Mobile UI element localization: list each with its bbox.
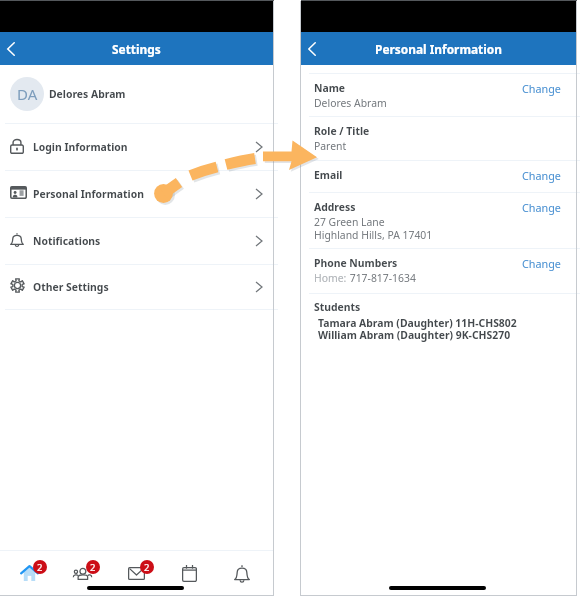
button[interactable]: Change bbox=[522, 200, 576, 215]
button[interactable]: Personal Information bbox=[0, 170, 273, 217]
button[interactable]: Change bbox=[522, 81, 576, 96]
staticText: Personal Information bbox=[33, 187, 144, 201]
staticText: Phone Numbers bbox=[314, 256, 398, 270]
staticText: Change bbox=[522, 200, 561, 215]
staticText: Notifications bbox=[33, 234, 101, 248]
staticText: Change bbox=[522, 81, 561, 96]
staticText: Change bbox=[522, 256, 561, 271]
button[interactable]: Mail bbox=[117, 558, 155, 588]
button[interactable]: Change bbox=[522, 256, 576, 271]
staticText: Highland Hills, PA 17401 bbox=[314, 228, 433, 242]
button[interactable]: People bbox=[63, 558, 101, 588]
button[interactable]: Notifications bbox=[0, 217, 273, 264]
button[interactable]: Phone Numbers bbox=[301, 248, 576, 292]
button[interactable]: Back bbox=[301, 32, 329, 65]
button[interactable]: DA bbox=[0, 65, 273, 123]
button[interactable]: Change bbox=[522, 168, 576, 183]
staticText: Settings bbox=[112, 41, 161, 57]
staticText: Tamara Abram (Daughter) 11H-CHS802 bbox=[318, 316, 517, 330]
staticText: Name bbox=[314, 81, 346, 95]
button[interactable]: Login Information bbox=[0, 123, 273, 170]
button[interactable]: Calendar bbox=[170, 558, 208, 588]
staticText: Parent bbox=[314, 139, 347, 153]
button[interactable]: Home bbox=[10, 558, 48, 588]
staticText: Login Information bbox=[33, 140, 128, 154]
button[interactable]: Back bbox=[0, 32, 28, 65]
staticText: Students bbox=[314, 300, 361, 314]
staticText: Address bbox=[314, 200, 356, 214]
staticText: 27 Green Lane bbox=[314, 215, 385, 229]
button[interactable]: Other Settings bbox=[0, 264, 273, 309]
staticText: 2 bbox=[37, 561, 43, 574]
staticText: Delores Abram bbox=[49, 87, 126, 101]
staticText: Role / Title bbox=[314, 124, 370, 138]
staticText: 2 bbox=[144, 561, 150, 574]
button[interactable]: Email bbox=[301, 160, 576, 192]
staticText: Email bbox=[314, 168, 343, 182]
staticText: Other Settings bbox=[33, 280, 109, 294]
button[interactable]: Address bbox=[301, 192, 576, 248]
staticText: Personal Information bbox=[375, 41, 502, 57]
staticText: Change bbox=[522, 168, 561, 183]
staticText: DA bbox=[17, 84, 38, 104]
staticText: 717-817-1634 bbox=[347, 271, 416, 285]
button[interactable]: Role / Title bbox=[301, 116, 576, 159]
staticText: William Abram (Daughter) 9K-CHS270 bbox=[318, 328, 511, 342]
staticText: Delores Abram bbox=[314, 96, 387, 110]
staticText: 2 bbox=[90, 561, 96, 574]
button[interactable]: Name bbox=[301, 73, 576, 117]
button[interactable]: Alerts bbox=[223, 559, 261, 589]
staticText: Home: bbox=[314, 271, 347, 285]
